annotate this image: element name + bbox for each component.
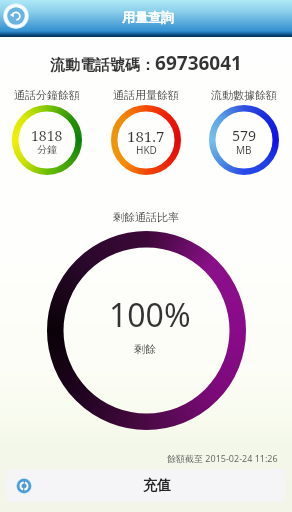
staticText: 剩餘 bbox=[134, 342, 156, 356]
staticText: 充值 bbox=[143, 477, 171, 495]
staticText: 579 bbox=[232, 126, 257, 145]
staticText: 1818 bbox=[31, 126, 63, 145]
staticText: 通話用量餘額 bbox=[113, 88, 179, 102]
button[interactable]: 充值 bbox=[7, 469, 285, 502]
staticText: 用量查詢 bbox=[122, 9, 174, 25]
staticText: 流動數據餘額 bbox=[211, 88, 277, 102]
staticText: 181.7 bbox=[127, 126, 165, 146]
staticText: 通話分鐘餘額 bbox=[14, 88, 80, 102]
staticText: 流動電話號碼：69736041 bbox=[0, 50, 292, 76]
staticText: 100% bbox=[109, 293, 191, 337]
staticText: 餘額截至 2015-02-24 11:26 bbox=[167, 452, 278, 464]
staticText: 剩餘通話比率 bbox=[0, 210, 292, 224]
button[interactable]: Back bbox=[3, 3, 29, 29]
button[interactable]: Refresh bbox=[16, 478, 32, 494]
staticText: MB bbox=[236, 143, 252, 157]
staticText: 分鐘 bbox=[37, 143, 57, 156]
staticText: HKD bbox=[136, 143, 157, 157]
